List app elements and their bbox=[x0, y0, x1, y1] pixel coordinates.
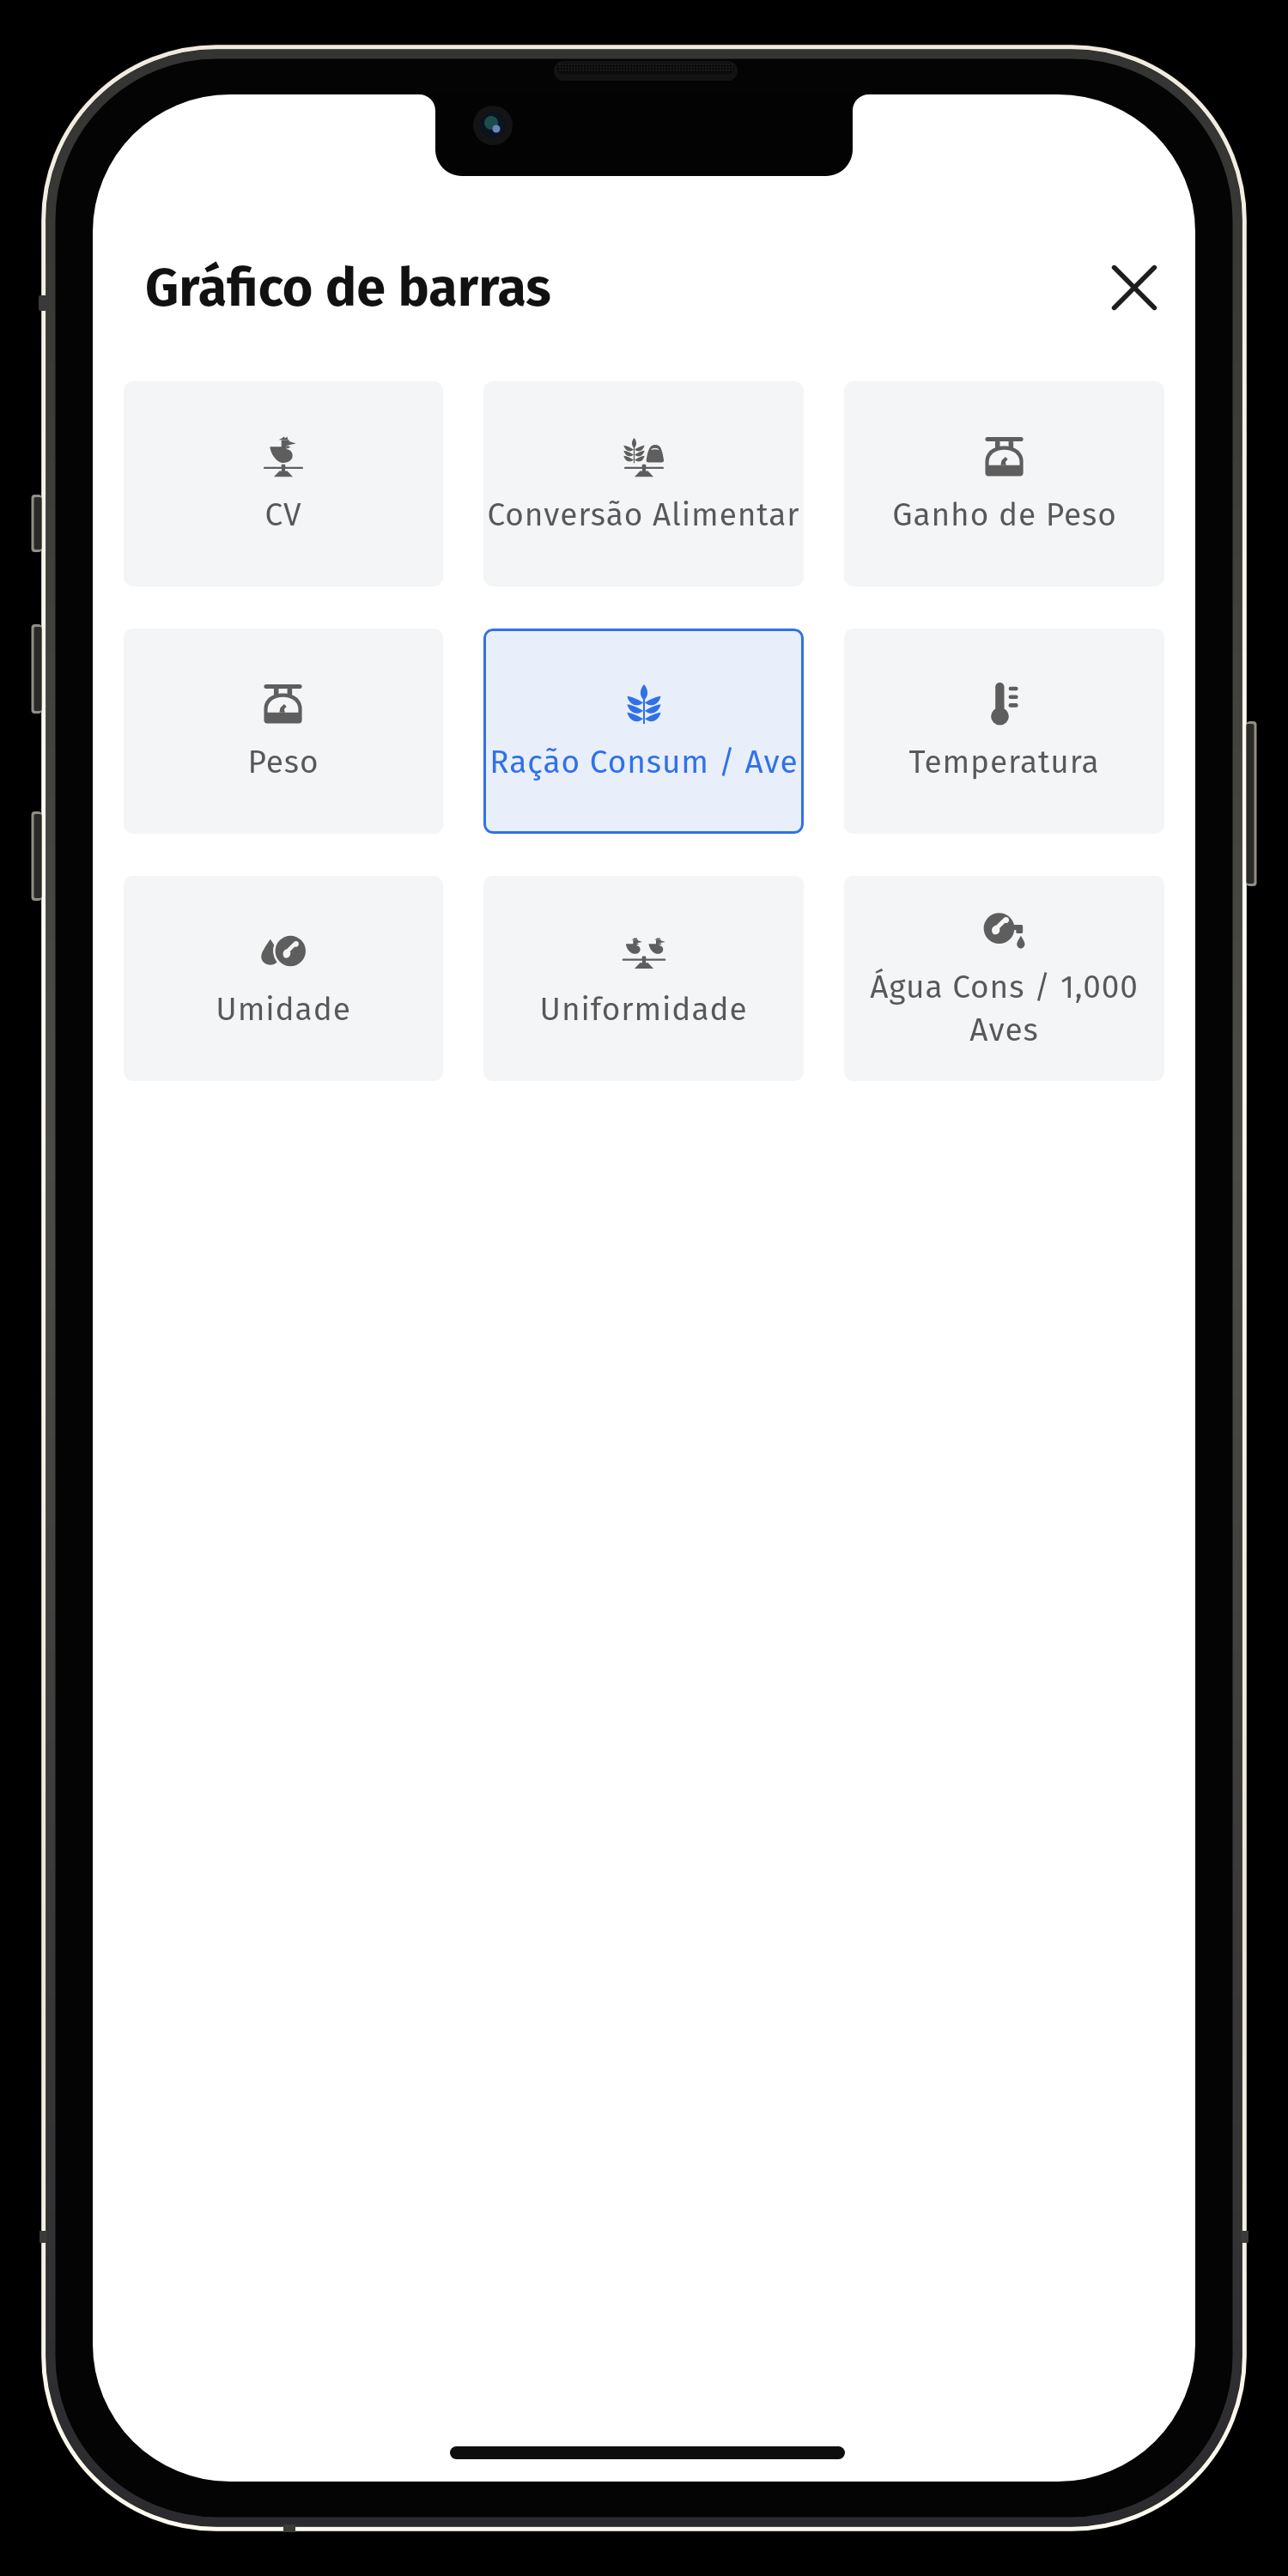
button[interactable]: Uniformidade bbox=[483, 876, 804, 1081]
staticText: CV bbox=[264, 495, 302, 533]
button[interactable]: Água Cons / 1,000 Aves bbox=[844, 876, 1164, 1081]
staticText: Ração Consum / Ave bbox=[489, 743, 799, 781]
staticText: Gráfico de barras bbox=[145, 257, 551, 319]
staticText: Umidade bbox=[216, 990, 351, 1028]
staticText: Temperatura bbox=[908, 743, 1100, 781]
staticText: Uniformidade bbox=[539, 990, 748, 1028]
button[interactable]: Ganho de Peso bbox=[844, 381, 1164, 586]
button[interactable]: Fechar bbox=[1092, 246, 1176, 330]
staticText: Ganho de Peso bbox=[892, 495, 1117, 533]
button[interactable]: Temperatura bbox=[844, 629, 1164, 834]
button[interactable]: CV bbox=[124, 381, 443, 586]
staticText: Água Cons / 1,000 Aves bbox=[848, 968, 1161, 1049]
button[interactable]: Umidade bbox=[124, 876, 443, 1081]
staticText: Conversão Alimentar bbox=[487, 495, 800, 533]
button[interactable]: Ração Consum / Ave bbox=[483, 629, 804, 834]
staticText: Peso bbox=[247, 743, 319, 781]
button[interactable]: Peso bbox=[124, 629, 443, 834]
button[interactable]: Conversão Alimentar bbox=[483, 381, 804, 586]
